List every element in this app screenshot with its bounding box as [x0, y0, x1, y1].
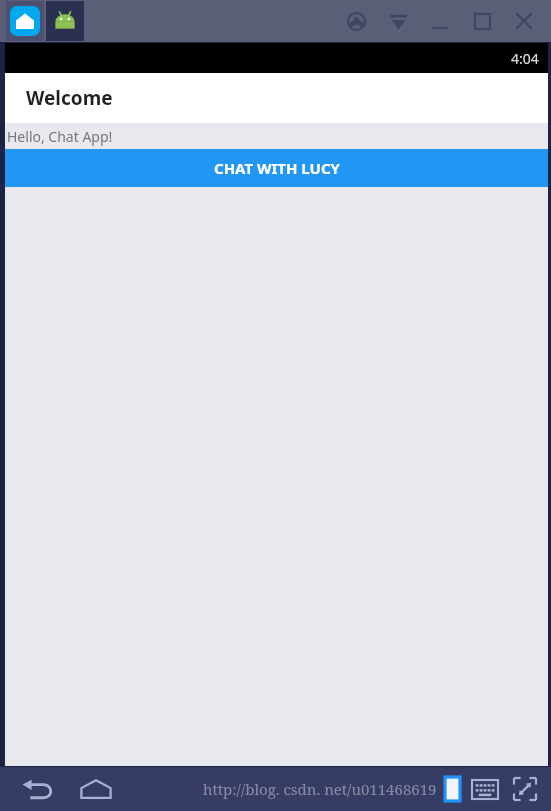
- button[interactable]: Back: [18, 769, 58, 809]
- button[interactable]: Rotate screen: [439, 773, 465, 805]
- button[interactable]: Home tab: [6, 1, 44, 41]
- button[interactable]: More options: [381, 4, 415, 38]
- button[interactable]: Maximize: [465, 4, 499, 38]
- button[interactable]: Home: [76, 769, 116, 809]
- button[interactable]: Fullscreen: [509, 773, 541, 805]
- button[interactable]: Android device tab: [46, 1, 84, 41]
- button[interactable]: Keyboard: [469, 773, 501, 805]
- button[interactable]: Close: [507, 4, 541, 38]
- staticText: Hello, Chat App!: [7, 127, 113, 146]
- button[interactable]: Minimize: [423, 4, 457, 38]
- staticText: CHAT WITH LUCY: [214, 158, 340, 178]
- staticText: http://blog. csdn. net/u011468619: [203, 779, 437, 799]
- staticText: 4:04: [511, 49, 539, 68]
- staticText: Welcome: [26, 85, 113, 111]
- button[interactable]: CHAT WITH LUCY: [5, 149, 548, 187]
- button[interactable]: Account: [339, 4, 373, 38]
